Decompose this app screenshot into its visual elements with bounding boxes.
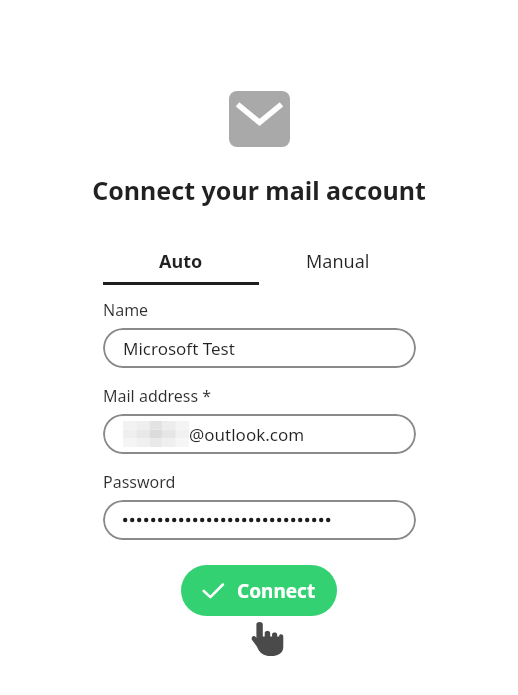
button[interactable]: Manual [259, 249, 416, 285]
button[interactable] [103, 500, 416, 540]
button[interactable]: Connect [181, 565, 337, 616]
staticText: @outlook.com [189, 423, 305, 446]
button[interactable]: Auto [103, 249, 259, 285]
staticText: Manual [306, 249, 370, 274]
staticText: Connect [237, 578, 316, 604]
staticText: Name [103, 299, 149, 321]
button[interactable]: Microsoft Test [103, 328, 416, 368]
staticText: Password [103, 471, 176, 493]
button[interactable]: @outlook.com [103, 414, 416, 454]
staticText: Microsoft Test [123, 337, 235, 360]
staticText: Auto [159, 249, 203, 274]
staticText: Mail address * [103, 385, 212, 407]
staticText: Connect your mail account [92, 173, 426, 207]
